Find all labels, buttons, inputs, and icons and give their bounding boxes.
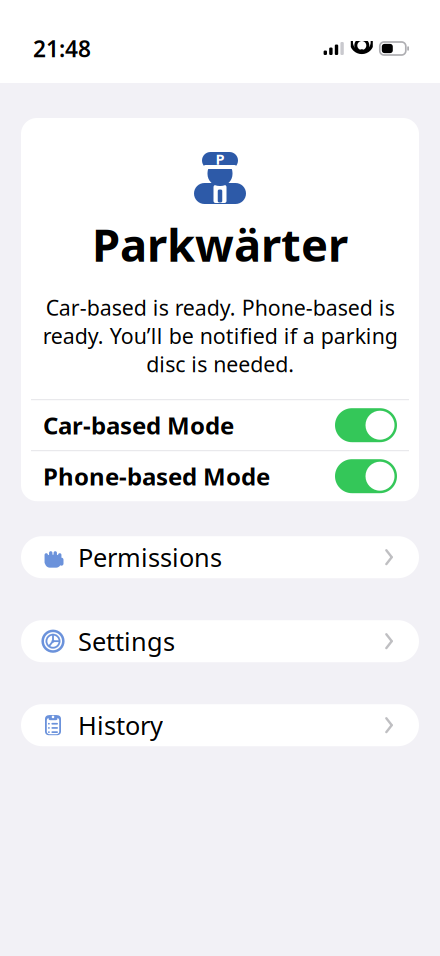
staticText: Settings [78,624,175,658]
staticText: Parkwärter [92,214,348,274]
button[interactable]: History [21,704,419,746]
staticText: Phone-based Mode [43,460,270,492]
staticText: Permissions [78,540,222,574]
staticText: Car-based is ready. Phone-based is ready… [42,293,397,378]
staticText: History [78,708,163,742]
staticText: 21:48 [33,33,91,63]
button[interactable]: Permissions [21,536,419,578]
staticText: Car-based Mode [43,409,234,441]
button[interactable]: Car-based Mode [31,400,409,450]
button[interactable]: Settings [21,620,419,662]
button[interactable]: Phone-based Mode [31,451,409,501]
staticText: P [215,149,224,169]
